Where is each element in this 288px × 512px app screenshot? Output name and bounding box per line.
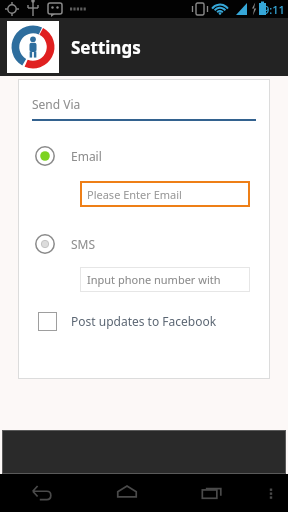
button[interactable]: Back [0, 474, 84, 512]
button[interactable]: Email [18, 141, 270, 171]
button[interactable]: Recent apps [169, 474, 254, 512]
staticText: SMS [71, 236, 96, 252]
staticText: Input phone number with [87, 272, 221, 287]
staticText: Send Via [32, 96, 81, 112]
staticText: Post updates to Facebook [71, 313, 217, 329]
button[interactable]: Input phone number with [80, 267, 250, 292]
button[interactable]: Home [84, 474, 169, 512]
button[interactable]: Post updates to Facebook [18, 308, 270, 334]
button[interactable]: App icon [7, 21, 59, 73]
staticText: Please Enter Email [87, 187, 182, 202]
button[interactable]: Please Enter Email [80, 181, 250, 207]
button[interactable]: SMS [18, 229, 270, 259]
staticText: Settings [71, 36, 141, 59]
staticText: 9:11 [263, 2, 285, 17]
button[interactable]: More options [254, 474, 288, 512]
staticText: Email [71, 148, 102, 164]
